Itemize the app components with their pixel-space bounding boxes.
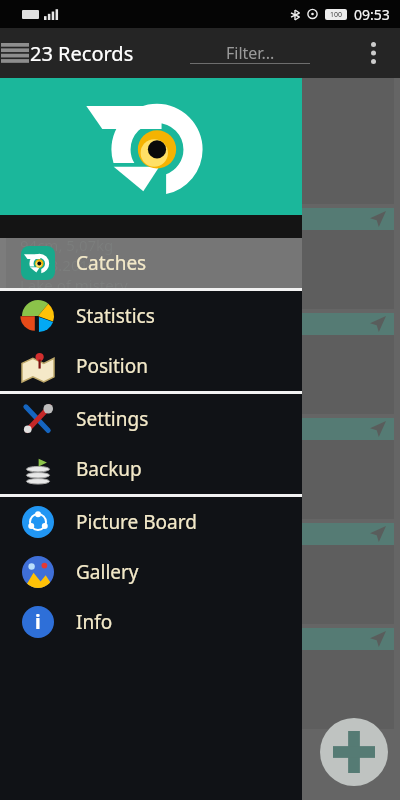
button[interactable]: More options bbox=[358, 38, 388, 68]
button[interactable]: Gallery bbox=[0, 547, 302, 597]
button[interactable]: Walleye bbox=[6, 418, 394, 519]
button[interactable]: Settings bbox=[0, 394, 302, 444]
staticText: 09:53 bbox=[354, 5, 390, 24]
staticText: i bbox=[35, 609, 41, 635]
staticText: Statistics bbox=[76, 303, 155, 329]
staticText: Info bbox=[76, 609, 113, 635]
button[interactable]: Add new record bbox=[320, 718, 388, 786]
button[interactable]: Rainbow trout bbox=[6, 523, 394, 624]
staticText: 77cm, 2,92kg bbox=[20, 340, 114, 360]
staticText: 48cm, 1,36kg bbox=[20, 550, 114, 570]
staticText: Picture Board bbox=[76, 509, 197, 535]
staticText: 88cm, 3,39kg bbox=[190, 122, 284, 142]
staticText: 18.02.2019 bbox=[20, 570, 97, 590]
button[interactable]: i bbox=[0, 597, 302, 647]
staticText: 23 Records bbox=[30, 40, 134, 67]
staticText: 77cm, 2,36kg bbox=[20, 445, 114, 465]
staticText: Lake of Vero bbox=[20, 590, 107, 610]
button[interactable]: Catches bbox=[0, 238, 302, 288]
button[interactable]: 88cm, 3,39kg bbox=[6, 78, 394, 204]
staticText: Filter... bbox=[226, 42, 275, 64]
staticText: Catches bbox=[76, 250, 147, 276]
staticText: Pike bbox=[20, 210, 48, 229]
staticText: Lake of mistery bbox=[20, 485, 128, 505]
staticText: Position bbox=[76, 353, 148, 379]
staticText: 30.03.2019 bbox=[20, 255, 97, 275]
staticText: 94cm, 5,07kg bbox=[20, 235, 114, 255]
button[interactable]: Picture Board bbox=[0, 497, 302, 547]
staticText: 02.03.2019 bbox=[20, 465, 97, 485]
button[interactable]: Position bbox=[0, 341, 302, 391]
staticText: 22.03.2019 bbox=[20, 360, 97, 380]
staticText: 100 bbox=[330, 10, 343, 20]
staticText: Brown trout bbox=[20, 630, 99, 649]
staticText: Settings bbox=[76, 406, 149, 432]
button[interactable]: Statistics bbox=[0, 291, 302, 341]
button[interactable]: Backup bbox=[0, 444, 302, 494]
button[interactable]: Filter... bbox=[190, 42, 310, 64]
staticText: Walleye bbox=[20, 420, 71, 439]
staticText: Gallery bbox=[76, 559, 139, 585]
staticText: Char bbox=[20, 315, 52, 334]
button[interactable]: Open navigation drawer bbox=[0, 33, 30, 73]
staticText: Lake of mistery bbox=[20, 380, 128, 400]
staticText: Rainbow trout bbox=[20, 525, 114, 544]
staticText: Lake of mistery bbox=[20, 275, 128, 295]
button[interactable]: Brown trout bbox=[6, 628, 394, 729]
button[interactable]: Pike bbox=[6, 208, 394, 309]
button[interactable]: Char bbox=[6, 313, 394, 414]
staticText: Backup bbox=[76, 456, 142, 482]
staticText: 13.05.2019 bbox=[190, 142, 267, 162]
